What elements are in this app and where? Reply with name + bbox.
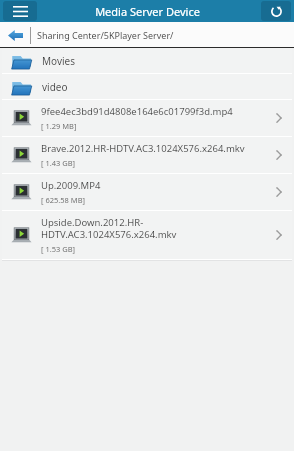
staticText: Up.2009.MP4	[41, 179, 101, 192]
staticText: Movies	[42, 54, 76, 68]
button[interactable]: Menu	[3, 1, 37, 21]
button[interactable]: Back	[0, 22, 30, 48]
staticText: [ 1.53 GB]	[41, 244, 76, 254]
button[interactable]: Refresh	[261, 1, 291, 21]
staticText: 9fee4ec3bd91d4808e164e6c01799f3d.mp4	[41, 105, 233, 118]
button[interactable]: Movies	[2, 48, 292, 73]
button[interactable]: Upside.Down.2012.HR-HDTV.AC3.1024X576.x2…	[2, 211, 292, 259]
staticText: [ 625.58 MB]	[41, 195, 85, 205]
button[interactable]: Brave.2012.HR-HDTV.AC3.1024X576.x264.mkv	[2, 137, 292, 173]
button[interactable]: Up.2009.MP4	[2, 174, 292, 210]
staticText: Media Server Device	[95, 4, 200, 19]
staticText: [ 1.29 MB]	[41, 121, 77, 131]
staticText: Brave.2012.HR-HDTV.AC3.1024X576.x264.mkv	[41, 142, 245, 155]
staticText: Sharing Center/5KPlayer Server/	[37, 29, 174, 41]
button[interactable]: video	[2, 74, 292, 99]
staticText: Upside.Down.2012.HR-HDTV.AC3.1024X576.x2…	[41, 216, 266, 241]
staticText: video	[42, 80, 68, 94]
button[interactable]: 9fee4ec3bd91d4808e164e6c01799f3d.mp4	[2, 100, 292, 136]
staticText: [ 1.43 GB]	[41, 158, 76, 168]
